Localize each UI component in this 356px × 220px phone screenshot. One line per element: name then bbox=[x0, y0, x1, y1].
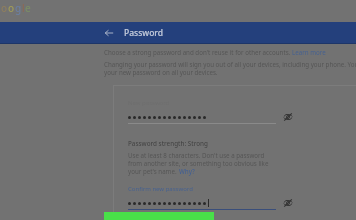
button[interactable]: Back bbox=[102, 26, 116, 40]
staticText: Password strength: Strong bbox=[128, 139, 208, 148]
button[interactable]: Why? bbox=[179, 167, 195, 175]
staticText: Use at least 8 characters. Don't use a p… bbox=[128, 151, 265, 159]
button[interactable]: Show password bbox=[282, 197, 294, 209]
staticText: l bbox=[22, 1, 25, 15]
staticText: o bbox=[8, 1, 15, 15]
button[interactable]: Learn more bbox=[292, 48, 326, 56]
staticText: Confirm new password bbox=[128, 185, 193, 193]
staticText: your pet's name. bbox=[128, 167, 179, 175]
staticText: Choose a strong password and don't reuse… bbox=[104, 48, 292, 56]
staticText: Password bbox=[124, 27, 164, 39]
staticText: from another site, or something too obvi… bbox=[128, 159, 269, 167]
staticText: Why? bbox=[179, 167, 195, 175]
staticText: your new password on all your devices. bbox=[104, 68, 218, 76]
staticText: g bbox=[15, 1, 22, 15]
staticText: Learn more bbox=[292, 48, 326, 56]
staticText: e bbox=[25, 1, 31, 15]
staticText: Changing your password will sign you out… bbox=[104, 60, 356, 68]
button[interactable]: Show password bbox=[282, 111, 294, 123]
staticText: o bbox=[1, 1, 8, 15]
